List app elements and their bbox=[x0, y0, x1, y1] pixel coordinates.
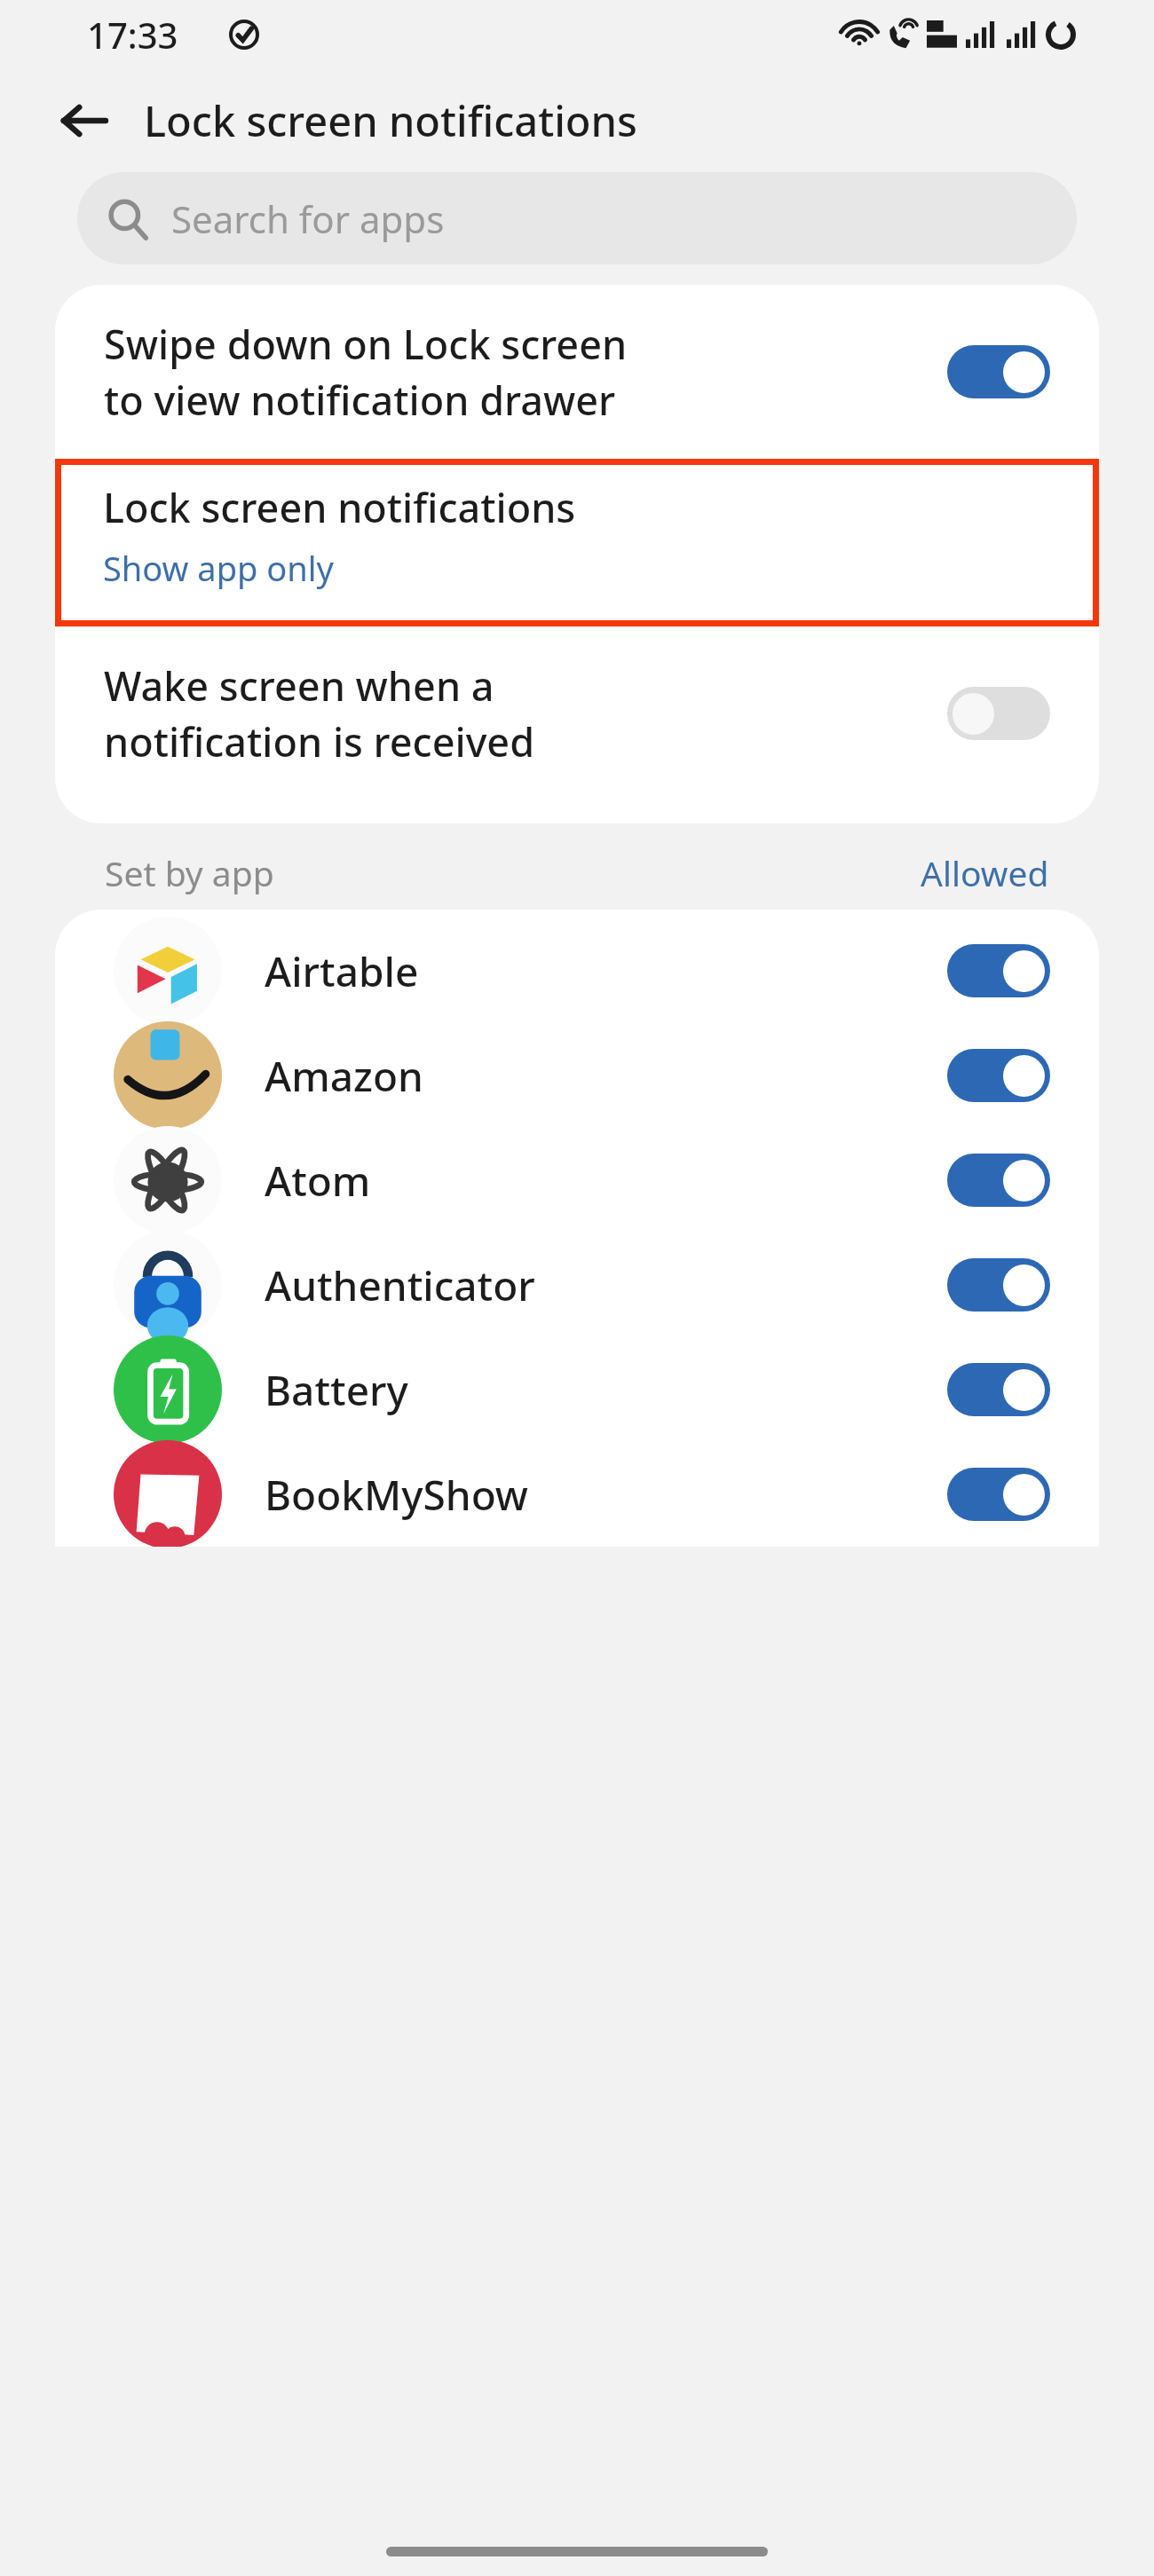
staticText: Atom bbox=[265, 1153, 947, 1209]
button[interactable]: Toggle on bbox=[947, 1154, 1050, 1207]
button[interactable]: Authenticator bbox=[55, 1233, 1099, 1337]
button[interactable]: Search for apps bbox=[77, 172, 1077, 264]
button[interactable]: Swipe down on Lock screen to view notifi… bbox=[55, 285, 1099, 459]
button[interactable]: Toggle off bbox=[947, 687, 1050, 740]
button[interactable]: Wake screen when a notification is recei… bbox=[55, 626, 1099, 800]
button[interactable]: Amazon bbox=[55, 1023, 1099, 1128]
button[interactable]: Back bbox=[51, 88, 117, 154]
staticText: Lock screen notifications bbox=[103, 480, 576, 534]
staticText: Authenticator bbox=[265, 1257, 947, 1313]
button[interactable]: Toggle on bbox=[947, 345, 1050, 398]
staticText: Lock screen notifications bbox=[144, 92, 637, 149]
staticText: Swipe down on Lock screen to view notifi… bbox=[104, 317, 933, 428]
button[interactable]: BookMyShow bbox=[55, 1442, 1099, 1547]
button[interactable]: Airtable bbox=[55, 918, 1099, 1023]
button[interactable]: Toggle on bbox=[947, 1363, 1050, 1416]
staticText: 17:33 bbox=[87, 11, 178, 59]
button[interactable]: Toggle on bbox=[947, 944, 1050, 997]
button[interactable]: Battery bbox=[55, 1337, 1099, 1442]
staticText: Show app only bbox=[103, 545, 334, 591]
staticText: BookMyShow bbox=[265, 1467, 947, 1523]
staticText: Amazon bbox=[265, 1048, 947, 1104]
button[interactable]: Allowed bbox=[921, 849, 1049, 896]
staticText: Search for apps bbox=[171, 193, 445, 244]
staticText: Set by app bbox=[105, 849, 274, 896]
button[interactable]: Atom bbox=[55, 1128, 1099, 1233]
button[interactable]: Toggle on bbox=[947, 1258, 1050, 1312]
staticText: Airtable bbox=[265, 943, 947, 999]
staticText: Wake screen when a notification is recei… bbox=[104, 658, 933, 769]
button[interactable]: Lock screen notifications bbox=[55, 459, 1099, 626]
button[interactable]: Toggle on bbox=[947, 1468, 1050, 1521]
button[interactable]: Toggle on bbox=[947, 1049, 1050, 1102]
staticText: Battery bbox=[265, 1362, 947, 1418]
staticText: Allowed bbox=[921, 849, 1049, 896]
